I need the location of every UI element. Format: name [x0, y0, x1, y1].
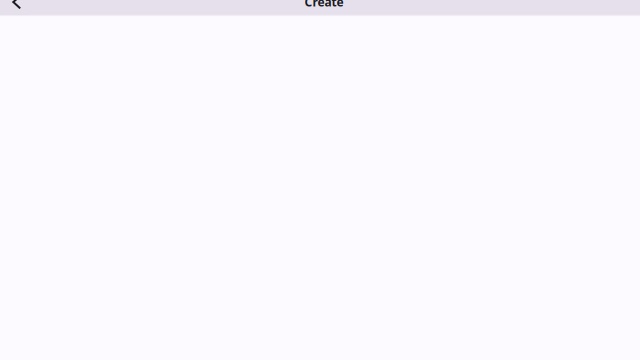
button[interactable]: Back — [0, 0, 30, 14]
staticText: Create — [304, 0, 343, 10]
